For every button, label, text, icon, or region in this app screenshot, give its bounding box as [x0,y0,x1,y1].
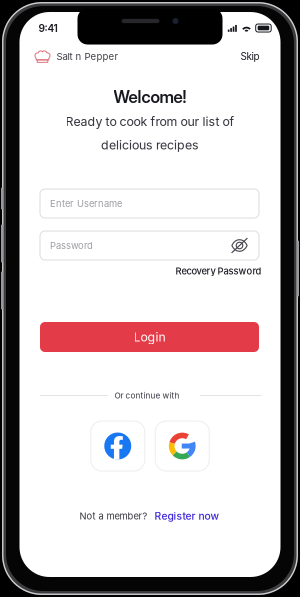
staticText: Or continue with [114,391,179,400]
staticText: Skip [240,50,259,62]
button[interactable]: Login [40,322,259,352]
button[interactable]: Recovery Password [173,262,263,280]
staticText: Salt n Pepper [56,51,118,62]
staticText: Login [133,330,165,344]
staticText: Ready to cook from our list of [65,114,234,129]
button[interactable]: Skip [233,45,266,67]
button[interactable]: Show password [230,236,249,254]
staticText: 9:41 [38,22,57,34]
staticText: Register now [154,510,219,522]
staticText: delicious recipes [101,137,199,152]
staticText: Enter Username [50,198,122,209]
staticText: Password [50,240,93,251]
button[interactable]: Continue with Facebook [91,421,145,471]
button[interactable]: Continue with Google [155,421,209,471]
staticText: Not a member? [79,510,147,522]
staticText: Recovery Password [175,265,261,277]
staticText: Welcome! [113,87,186,107]
button[interactable]: Register now [153,507,220,525]
